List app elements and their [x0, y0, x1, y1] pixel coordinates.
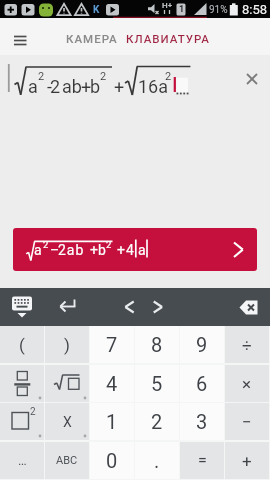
staticText: 2	[30, 406, 36, 418]
staticText: 3	[196, 410, 208, 433]
staticText: +	[114, 76, 125, 97]
staticText: 2	[50, 76, 61, 97]
staticText: =	[198, 451, 207, 470]
staticText: b	[98, 242, 106, 258]
staticText: +	[242, 451, 252, 471]
staticText: a	[34, 242, 42, 258]
staticText: 9	[196, 333, 208, 356]
button[interactable]: 0	[90, 442, 134, 479]
staticText: )	[64, 335, 70, 355]
staticText: 8	[151, 333, 163, 356]
button[interactable]: КАМЕРА	[58, 22, 122, 52]
staticText: +	[90, 242, 98, 258]
staticText: K	[93, 4, 100, 16]
staticText: H+	[162, 1, 173, 10]
staticText: 2	[100, 70, 107, 83]
button[interactable]: ÷	[225, 326, 269, 363]
button[interactable]	[230, 290, 266, 324]
staticText: 5	[151, 372, 163, 395]
staticText: 0	[106, 449, 118, 472]
staticText: КАМЕРА	[66, 32, 118, 45]
staticText: …	[18, 453, 27, 468]
button[interactable]: −	[225, 403, 269, 440]
staticText: 1	[179, 4, 185, 15]
staticText: a	[28, 76, 38, 97]
staticText: b	[90, 76, 101, 97]
staticText: ab	[62, 76, 82, 97]
staticText: −	[242, 412, 252, 432]
staticText: ABC	[56, 454, 78, 467]
button[interactable]	[45, 365, 89, 402]
staticText: 2	[165, 70, 172, 83]
staticText: 2	[43, 239, 49, 250]
staticText: 4	[126, 242, 134, 258]
button[interactable]	[8, 28, 40, 50]
staticText: 4	[106, 372, 118, 395]
button[interactable]: 7	[90, 326, 134, 363]
button[interactable]: 6	[180, 365, 224, 402]
staticText: 7	[106, 333, 118, 356]
button[interactable]: ×	[225, 365, 269, 402]
staticText: 2	[106, 239, 112, 250]
button[interactable]: КЛАВИАТУРА	[120, 22, 224, 52]
button[interactable]	[112, 290, 146, 324]
button[interactable]: =	[180, 442, 224, 479]
staticText: КЛАВИАТУРА	[126, 32, 211, 45]
button[interactable]: 4	[90, 365, 134, 402]
staticText: (	[19, 335, 25, 355]
button[interactable]: 2	[0, 403, 44, 440]
staticText: X	[63, 414, 72, 430]
staticText: –	[50, 242, 60, 258]
button[interactable]: 2	[135, 403, 179, 440]
staticText: 2ab	[58, 242, 85, 258]
staticText: ÷	[242, 335, 252, 355]
staticText: .	[154, 449, 160, 472]
button[interactable]: .	[135, 442, 179, 479]
staticText: +	[117, 242, 125, 258]
button[interactable]: ABC	[45, 442, 89, 479]
staticText: 91%	[209, 4, 228, 16]
staticText: -	[47, 76, 52, 97]
button[interactable]: )	[45, 326, 89, 363]
button[interactable]	[238, 65, 265, 92]
button[interactable]: +	[225, 442, 269, 479]
button[interactable]: 9	[180, 326, 224, 363]
button[interactable]: a	[13, 228, 257, 271]
button[interactable]: 5	[135, 365, 179, 402]
staticText: 2	[151, 410, 163, 433]
staticText: 1	[106, 410, 118, 433]
staticText: +	[81, 76, 92, 97]
button[interactable]	[50, 290, 84, 324]
button[interactable]: (	[0, 326, 44, 363]
button[interactable]: X	[45, 403, 89, 440]
button[interactable]: 1	[90, 403, 134, 440]
staticText: 2	[38, 70, 45, 83]
staticText: 8:58	[242, 2, 268, 17]
staticText: a	[138, 242, 146, 258]
button[interactable]	[0, 365, 44, 402]
button[interactable]	[4, 290, 44, 324]
button[interactable]: …	[0, 442, 44, 479]
staticText: 16a	[138, 76, 169, 97]
button[interactable]	[141, 290, 175, 324]
button[interactable]: 3	[180, 403, 224, 440]
staticText: 6	[196, 372, 208, 395]
staticText: ×	[242, 374, 252, 394]
button[interactable]: 8	[135, 326, 179, 363]
